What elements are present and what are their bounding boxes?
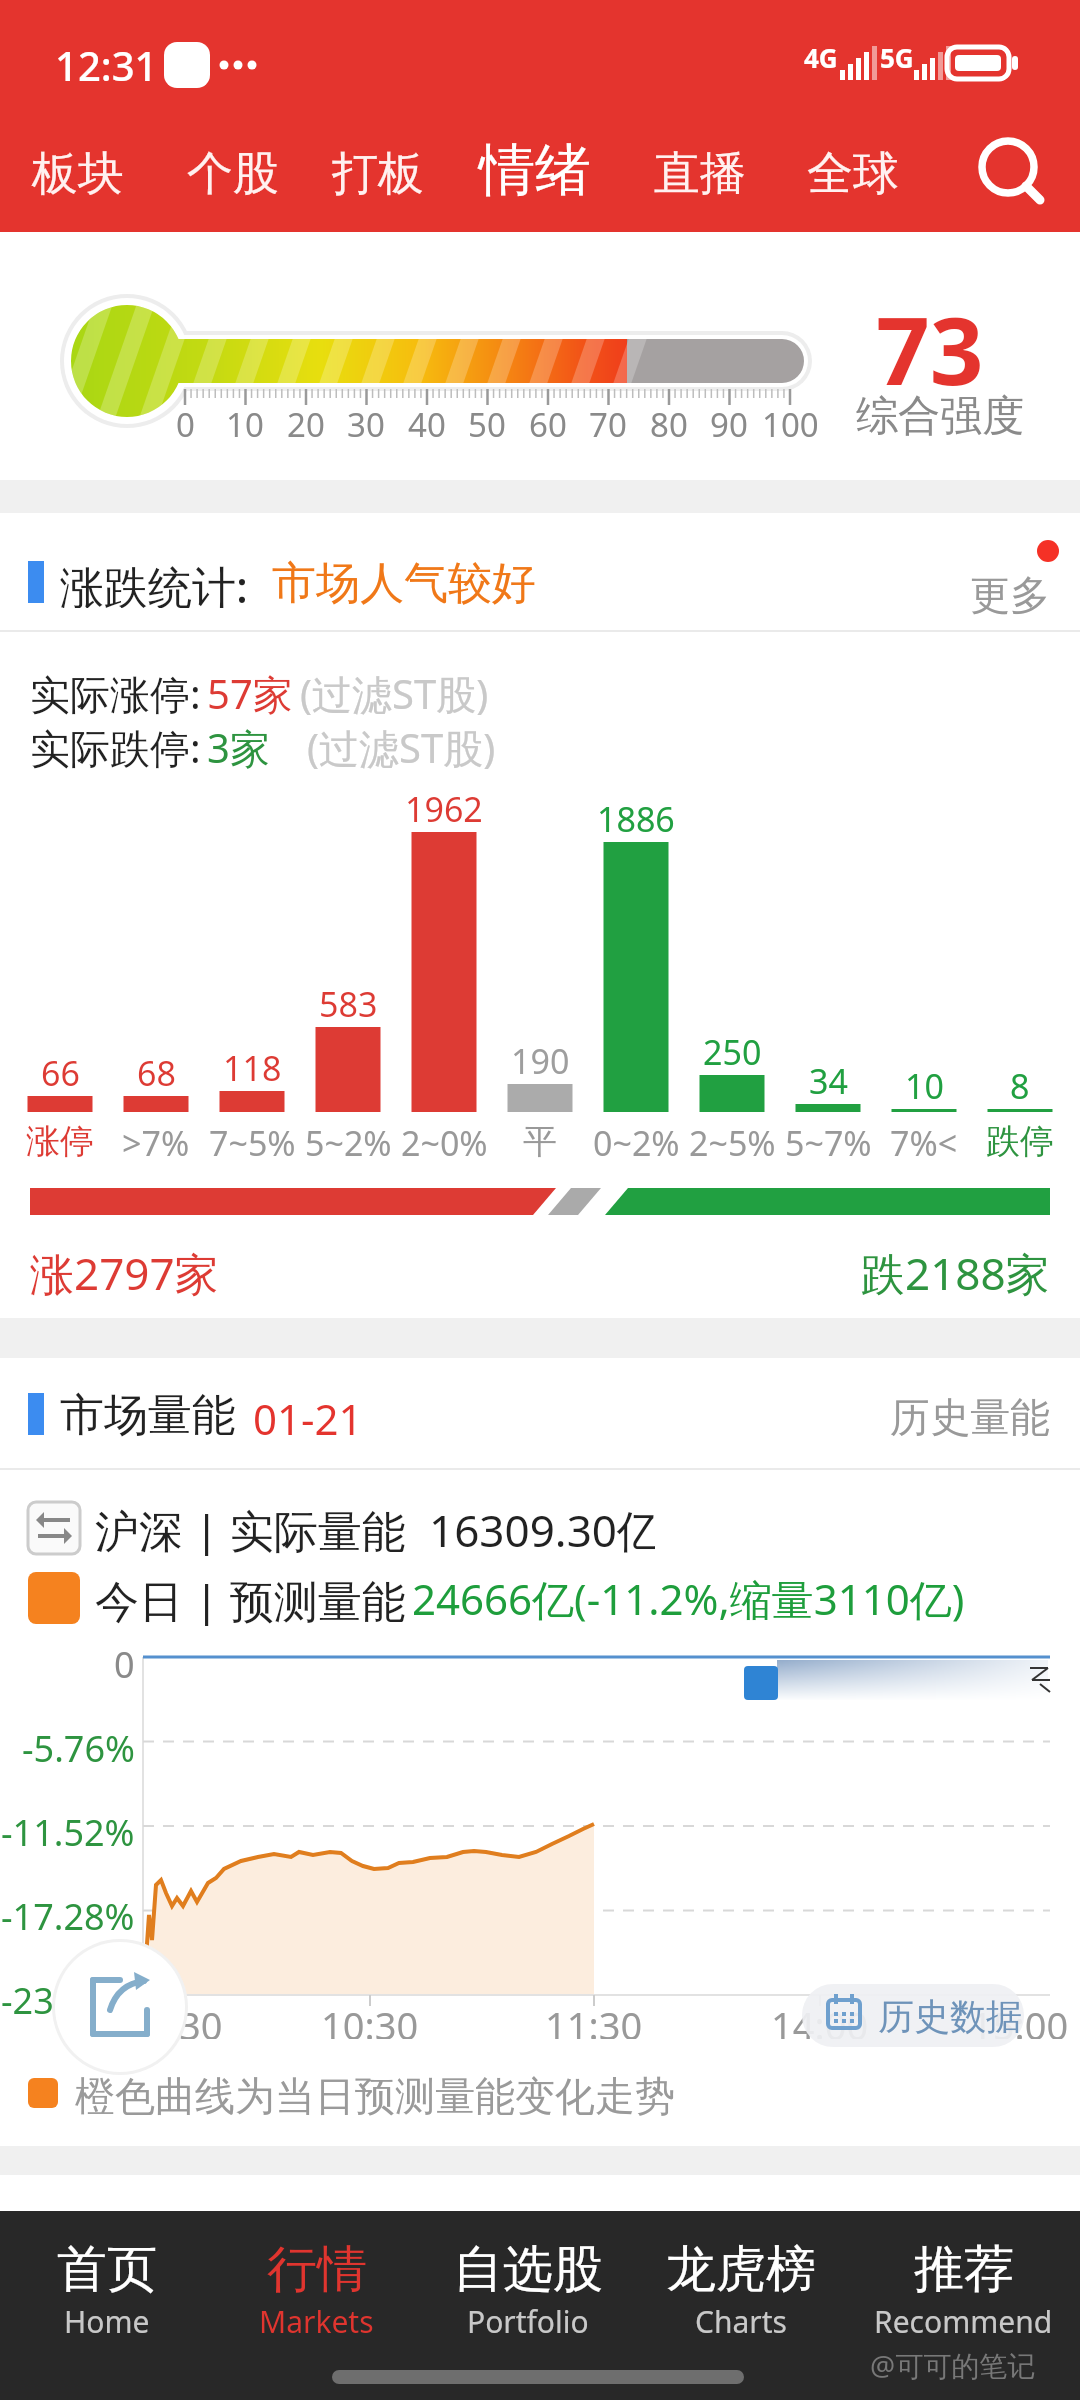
- staticText: 57家: [207, 666, 293, 716]
- staticText: 涨2797家: [30, 1243, 219, 1299]
- button[interactable]: 行情: [211, 2225, 421, 2355]
- staticText: 市场量能: [60, 1388, 236, 1440]
- staticText: 涨停: [26, 1120, 94, 1162]
- staticText: 10:30: [321, 1999, 419, 2039]
- staticText: 推荐: [914, 2238, 1014, 2301]
- button[interactable]: [28, 134, 128, 214]
- staticText: Markets: [259, 2301, 374, 2342]
- staticText: 行情: [267, 2238, 367, 2301]
- button[interactable]: 龙虎榜: [636, 2225, 846, 2355]
- staticText: 5~2%: [305, 1120, 392, 1162]
- staticText: 11:30: [545, 1999, 643, 2039]
- staticText: 综合强度: [856, 390, 1024, 440]
- staticText: 250: [703, 1029, 762, 1071]
- staticText: 34: [809, 1058, 848, 1100]
- button[interactable]: [52, 1939, 188, 2075]
- staticText: Home: [64, 2301, 150, 2342]
- staticText: Charts: [695, 2301, 787, 2342]
- staticText: 70: [589, 402, 627, 442]
- staticText: -11.52%: [1, 1808, 135, 1846]
- staticText: 平: [523, 1120, 557, 1162]
- staticText: 40: [408, 402, 446, 442]
- staticText: 0: [176, 402, 195, 442]
- staticText: 5G: [880, 40, 914, 68]
- staticText: 历史数据: [878, 1994, 1022, 2039]
- staticText: (过滤ST股): [300, 666, 489, 716]
- staticText: 2~5%: [689, 1120, 776, 1162]
- staticText: 15:00: [971, 1999, 1069, 2039]
- staticText: 实际跌停:: [30, 720, 201, 770]
- button[interactable]: [930, 550, 1070, 630]
- staticText: 跌停: [986, 1120, 1054, 1162]
- button[interactable]: [470, 134, 600, 214]
- staticText: 14:00: [771, 1999, 869, 2039]
- staticText: 583: [319, 981, 378, 1023]
- staticText: -5.76%: [22, 1724, 135, 1762]
- staticText: 01-21: [253, 1390, 363, 1440]
- staticText: 10: [226, 402, 264, 442]
- staticText: 情绪: [479, 135, 591, 206]
- staticText: 80: [650, 402, 688, 442]
- staticText: 2~0%: [401, 1120, 488, 1162]
- staticText: 涨跌统计:: [60, 556, 248, 608]
- staticText: 全球: [807, 145, 899, 203]
- staticText: 24666亿(-11.2%,缩量3110亿): [412, 1570, 965, 1626]
- staticText: 68: [137, 1050, 176, 1092]
- button[interactable]: [183, 134, 283, 214]
- staticText: 打板: [332, 145, 424, 203]
- staticText: 更多: [970, 570, 1050, 618]
- staticText: 首页: [57, 2238, 157, 2301]
- staticText: 10: [905, 1063, 944, 1105]
- staticText: 直播: [654, 145, 746, 203]
- button[interactable]: 推荐: [858, 2225, 1068, 2355]
- staticText: (过滤ST股): [307, 720, 496, 770]
- button[interactable]: [0, 2211, 1080, 2400]
- staticText: 7~5%: [209, 1120, 296, 1162]
- button[interactable]: [650, 134, 750, 214]
- staticText: 9:30: [147, 1999, 223, 2039]
- staticText: 龙虎榜: [666, 2238, 816, 2301]
- staticText: 20: [287, 402, 325, 442]
- button[interactable]: [802, 1984, 1024, 2047]
- staticText: 自选股: [453, 2238, 603, 2301]
- staticText: 1886: [597, 796, 675, 838]
- staticText: 沪深 | 实际量能 16309.30亿: [95, 1500, 655, 1556]
- staticText: 今日 | 预测量能: [95, 1570, 405, 1626]
- button[interactable]: 自选股: [423, 2225, 633, 2355]
- staticText: -23.04%: [1, 1976, 135, 2014]
- button[interactable]: 首页: [2, 2225, 212, 2355]
- staticText: 50: [468, 402, 506, 442]
- staticText: -17.28%: [1, 1892, 135, 1930]
- staticText: 1962: [405, 786, 483, 828]
- staticText: 90: [710, 402, 748, 442]
- staticText: 跌2188家: [861, 1243, 1050, 1299]
- staticText: 66: [41, 1050, 80, 1092]
- staticText: 190: [511, 1038, 570, 1080]
- staticText: @可可的笔记: [870, 2346, 1036, 2384]
- button[interactable]: [803, 134, 903, 214]
- staticText: 4G: [804, 40, 838, 68]
- button[interactable]: [328, 134, 428, 214]
- staticText: 3家: [207, 720, 270, 770]
- staticText: 8: [1010, 1063, 1030, 1105]
- staticText: 0~2%: [593, 1120, 680, 1162]
- staticText: Portfolio: [467, 2301, 589, 2342]
- staticText: 历史量能: [890, 1392, 1050, 1440]
- staticText: Recommend: [874, 2301, 1053, 2342]
- staticText: 市场人气较好: [272, 556, 536, 608]
- staticText: 橙色曲线为当日预测量能变化走势: [75, 2071, 675, 2121]
- staticText: 30: [347, 402, 385, 442]
- button[interactable]: [860, 1380, 1060, 1450]
- staticText: 118: [223, 1045, 282, 1087]
- staticText: 100: [762, 402, 819, 442]
- staticText: 个股: [187, 145, 279, 203]
- staticText: 0: [114, 1640, 135, 1678]
- staticText: 板块: [32, 145, 124, 203]
- staticText: 实际涨停:: [30, 666, 201, 716]
- staticText: 12:31: [55, 38, 158, 90]
- button[interactable]: [975, 130, 1055, 210]
- staticText: >7%: [122, 1120, 190, 1162]
- staticText: 73: [876, 285, 984, 395]
- staticText: 60: [529, 402, 567, 442]
- staticText: 5~7%: [785, 1120, 872, 1162]
